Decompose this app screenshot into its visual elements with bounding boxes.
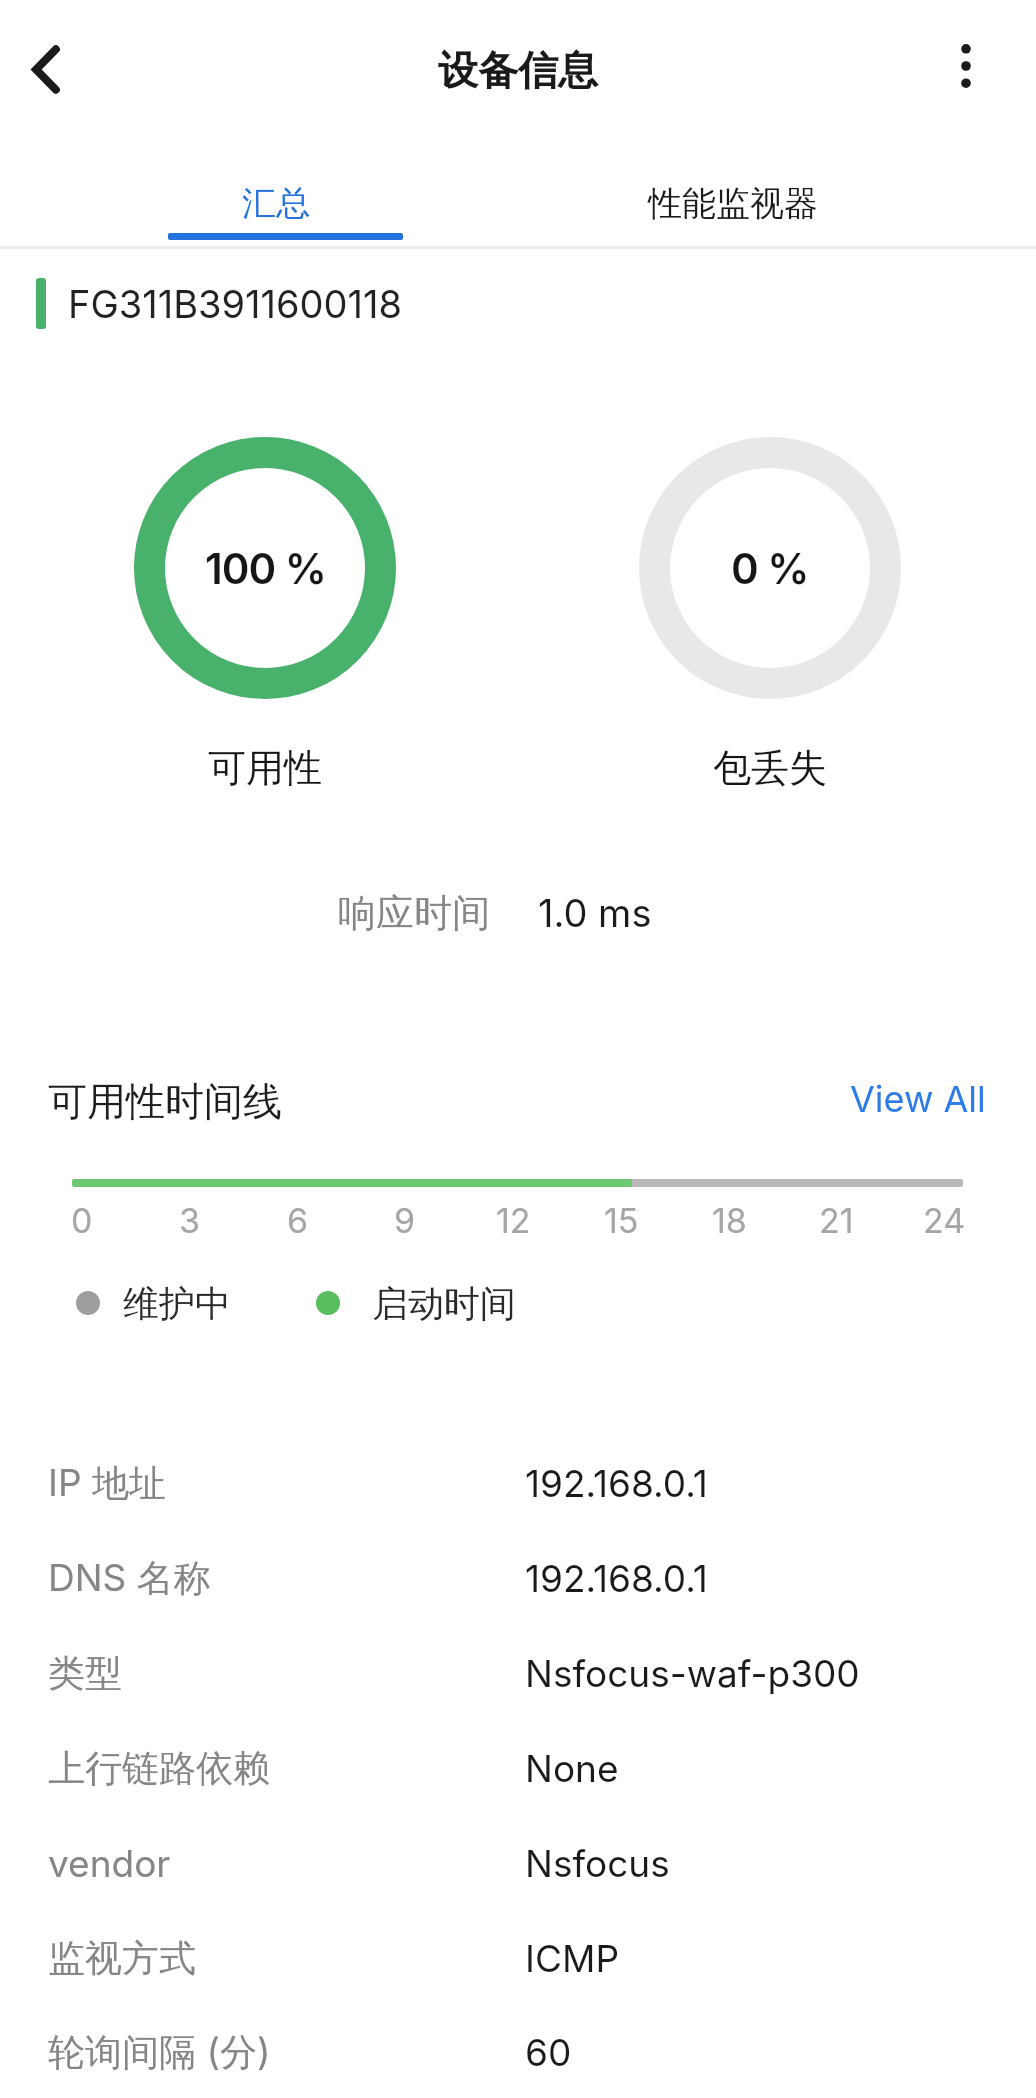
staticText: 9 (394, 1200, 416, 1241)
staticText: vendor (48, 1841, 171, 1886)
staticText: 3 (179, 1200, 201, 1241)
staticText: Nsfocus (525, 1841, 670, 1886)
staticText: View All (850, 1077, 986, 1121)
staticText: 0 (71, 1200, 93, 1241)
staticText: Nsfocus-waf-p300 (525, 1651, 860, 1696)
staticText: 可用性 (208, 744, 322, 792)
staticText: 0 % (731, 543, 809, 594)
staticText: FG311B3911600118 (68, 281, 402, 327)
staticText: 上行链路依赖 (48, 1745, 270, 1792)
staticText: 100 % (205, 543, 326, 594)
staticText: 轮询间隔 (分) (48, 2029, 271, 2076)
staticText: 6 (287, 1200, 309, 1241)
staticText: 192.168.0.1 (525, 1556, 708, 1601)
button[interactable]: View All (850, 1077, 986, 1121)
staticText: ICMP (525, 1936, 620, 1981)
button[interactable] (14, 37, 78, 101)
staticText: 性能监视器 (648, 182, 818, 225)
staticText: None (525, 1746, 619, 1791)
staticText: 21 (819, 1200, 854, 1241)
button[interactable] (936, 36, 996, 96)
staticText: DNS 名称 (48, 1555, 211, 1602)
staticText: 192.168.0.1 (525, 1461, 708, 1506)
staticText: 12 (496, 1200, 531, 1241)
staticText: 15 (604, 1200, 639, 1241)
staticText: 设备信息 (438, 45, 598, 95)
staticText: 维护中 (123, 1281, 231, 1326)
staticText: 类型 (48, 1650, 122, 1697)
staticText: 包丢失 (713, 744, 827, 792)
staticText: 可用性时间线 (48, 1077, 282, 1126)
button[interactable]: 汇总 (130, 175, 422, 231)
staticText: 启动时间 (372, 1281, 516, 1326)
staticText: 汇总 (242, 182, 310, 225)
staticText: 1.0 ms (538, 890, 652, 936)
staticText: 监视方式 (48, 1935, 196, 1982)
button[interactable]: 性能监视器 (587, 175, 879, 231)
staticText: IP 地址 (48, 1460, 166, 1507)
staticText: 24 (923, 1200, 966, 1241)
staticText: 60 (525, 2030, 572, 2075)
staticText: 18 (712, 1200, 747, 1241)
staticText: 响应时间 (338, 889, 490, 937)
